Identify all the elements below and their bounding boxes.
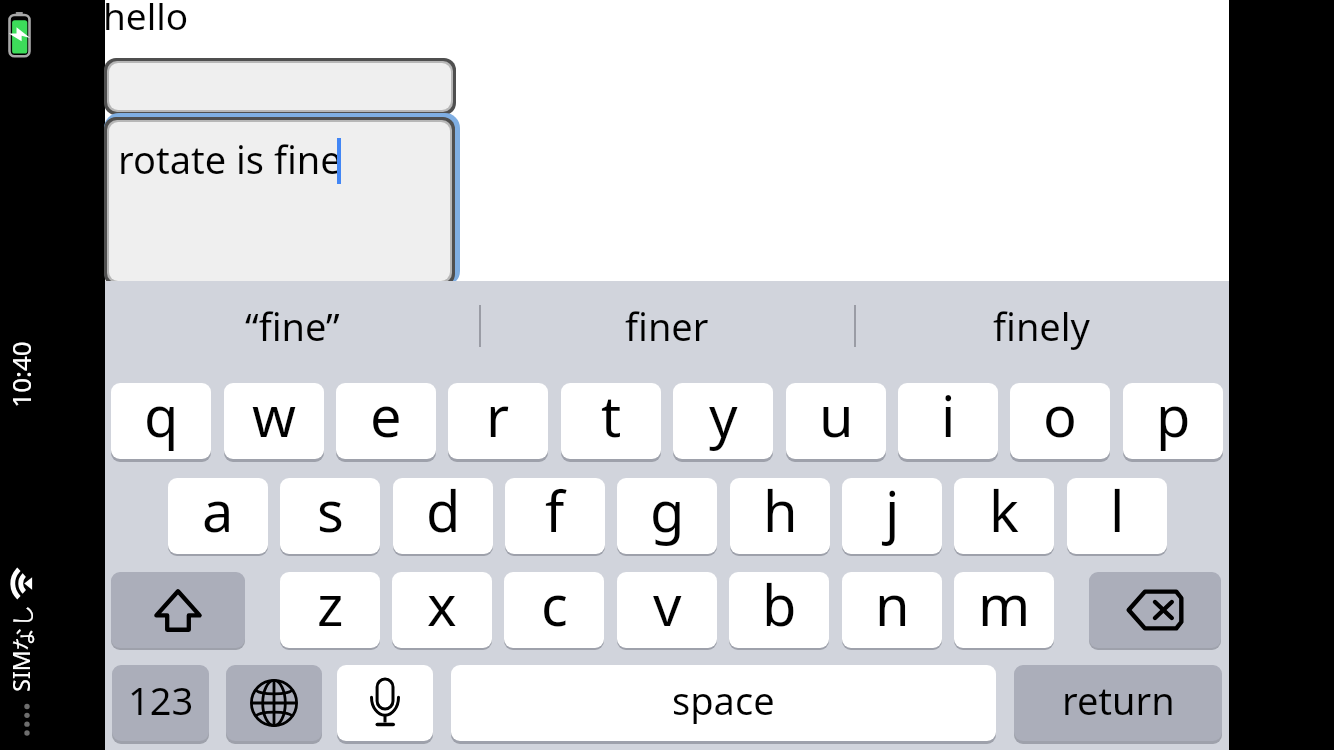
button[interactable]: x <box>392 572 492 648</box>
staticText: v <box>653 572 682 642</box>
button[interactable]: f <box>505 478 605 554</box>
staticText: l <box>1110 478 1125 548</box>
button[interactable]: Backspace <box>1089 572 1221 648</box>
button[interactable]: b <box>729 572 829 648</box>
button[interactable]: finer <box>479 281 854 364</box>
button[interactable] <box>104 58 456 115</box>
staticText: e <box>370 383 402 453</box>
button[interactable]: return <box>1014 665 1222 741</box>
staticText: d <box>426 478 461 548</box>
button[interactable]: j <box>842 478 942 554</box>
staticText: c <box>541 572 568 642</box>
button[interactable]: space <box>451 665 996 741</box>
staticText: 123 <box>128 674 194 726</box>
button[interactable]: o <box>1010 383 1110 459</box>
staticText: w <box>252 383 297 453</box>
staticText: o <box>1043 383 1077 453</box>
button[interactable]: rotate is fine <box>104 117 455 286</box>
button[interactable]: y <box>673 383 773 459</box>
staticText: s <box>317 478 344 548</box>
staticText: n <box>875 572 910 642</box>
staticText: q <box>144 383 179 453</box>
staticText: 10:40 <box>3 341 38 408</box>
button[interactable]: i <box>898 383 998 459</box>
staticText: t <box>601 383 622 453</box>
button[interactable]: finely <box>854 281 1229 364</box>
staticText: i <box>941 383 956 453</box>
button[interactable]: h <box>730 478 830 554</box>
button[interactable]: “fine” <box>105 281 479 364</box>
staticText: rotate is fine <box>118 133 342 185</box>
button[interactable]: c <box>504 572 604 648</box>
staticText: space <box>672 674 775 726</box>
button[interactable]: z <box>280 572 380 648</box>
button[interactable]: k <box>954 478 1054 554</box>
staticText: p <box>1156 383 1191 453</box>
button[interactable]: 123 <box>112 665 209 741</box>
button[interactable]: d <box>393 478 493 554</box>
button[interactable]: Shift <box>111 572 245 648</box>
staticText: h <box>763 478 798 548</box>
staticText: “fine” <box>245 300 340 352</box>
staticText: x <box>427 572 457 642</box>
staticText: z <box>317 572 344 642</box>
button[interactable]: a <box>168 478 268 554</box>
staticText: finer <box>625 300 709 352</box>
staticText: k <box>989 478 1019 548</box>
button[interactable]: v <box>617 572 717 648</box>
button[interactable]: Change keyboard <box>226 665 322 741</box>
staticText: b <box>762 572 797 642</box>
button[interactable]: e <box>336 383 436 459</box>
button[interactable]: s <box>280 478 380 554</box>
staticText: u <box>819 383 854 453</box>
staticText: finely <box>993 300 1090 352</box>
button[interactable]: u <box>786 383 886 459</box>
button[interactable]: t <box>561 383 661 459</box>
staticText: f <box>545 478 565 548</box>
button[interactable]: n <box>842 572 942 648</box>
staticText: return <box>1062 674 1175 726</box>
button[interactable]: g <box>617 478 717 554</box>
staticText: SIMなし <box>5 603 36 692</box>
button[interactable]: Voice input <box>337 665 433 741</box>
button[interactable]: q <box>111 383 211 459</box>
staticText: y <box>709 383 738 453</box>
button[interactable]: l <box>1067 478 1167 554</box>
staticText: j <box>885 478 900 548</box>
button[interactable]: p <box>1123 383 1223 459</box>
staticText: m <box>978 572 1031 642</box>
staticText: a <box>202 478 234 548</box>
button[interactable]: r <box>448 383 548 459</box>
staticText: hello <box>103 0 189 40</box>
staticText: r <box>486 383 510 453</box>
staticText: g <box>650 478 685 548</box>
button[interactable]: m <box>954 572 1054 648</box>
button[interactable]: w <box>224 383 324 459</box>
